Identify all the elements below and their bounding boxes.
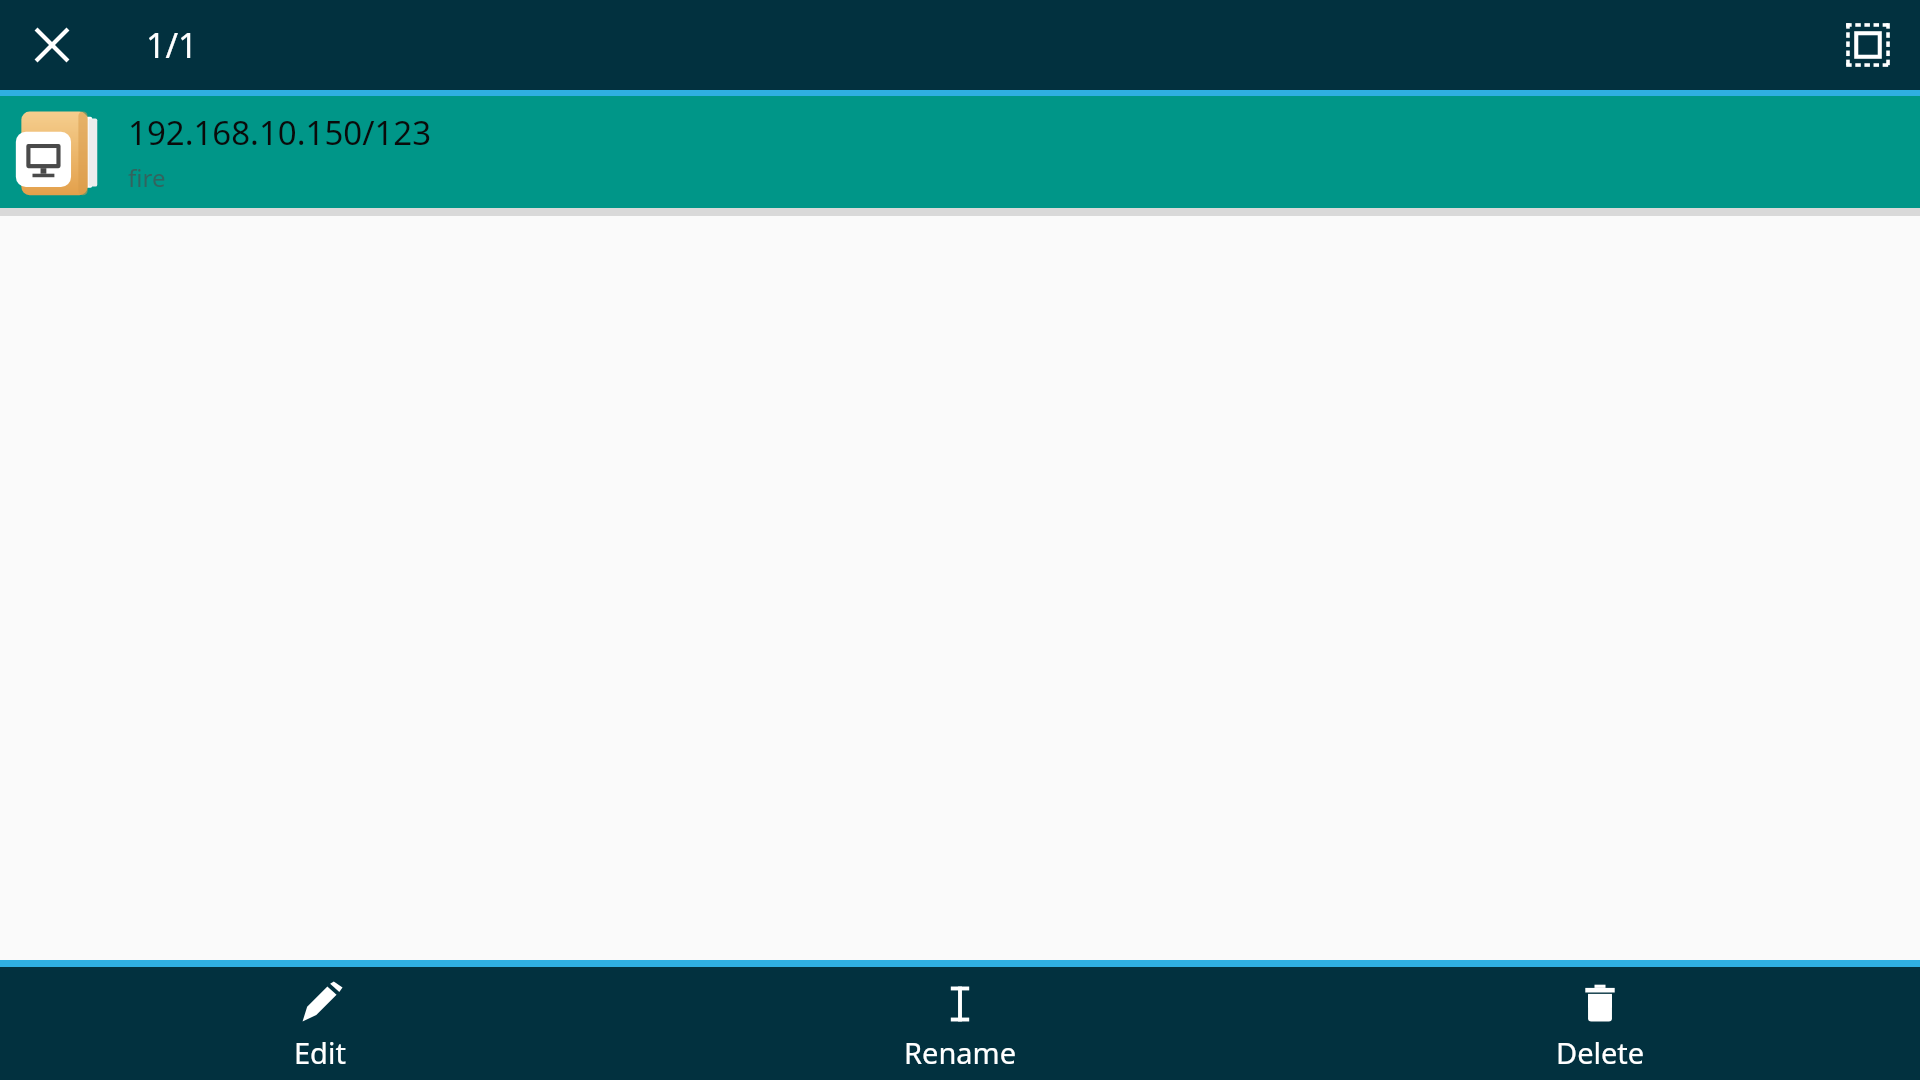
button[interactable]: 192.168.10.150/123 xyxy=(0,96,1920,208)
staticText: Delete xyxy=(1556,1033,1645,1072)
staticText: fire xyxy=(128,161,166,194)
button[interactable]: Rename xyxy=(640,967,1280,1072)
staticText: Edit xyxy=(294,1033,346,1072)
button[interactable]: Select all xyxy=(1824,1,1912,89)
button[interactable]: Delete xyxy=(1280,967,1920,1072)
staticText: 192.168.10.150/123 xyxy=(128,110,432,155)
staticText: 1/1 xyxy=(146,22,198,68)
button[interactable]: Edit xyxy=(0,967,640,1072)
staticText: Rename xyxy=(904,1033,1017,1072)
button[interactable]: Close xyxy=(8,1,96,89)
